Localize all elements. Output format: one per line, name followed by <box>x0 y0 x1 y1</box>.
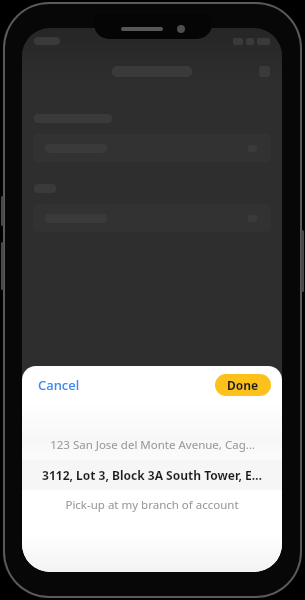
button[interactable]: Pick-up at my branch of account <box>22 490 282 520</box>
staticText: Pick-up at my branch of account <box>65 497 239 513</box>
staticText: Cancel <box>38 376 80 394</box>
button[interactable]: 3112, Lot 3, Block 3A South Tower, E… <box>22 460 282 490</box>
staticText: 123 San Jose del Monte Avenue, Cag… <box>50 437 255 453</box>
button[interactable]: Cancel <box>30 371 88 399</box>
staticText: 3112, Lot 3, Block 3A South Tower, E… <box>42 467 262 483</box>
button[interactable]: 123 San Jose del Monte Avenue, Cag… <box>22 430 282 460</box>
button[interactable]: Done <box>215 374 271 396</box>
staticText: Done <box>227 377 259 393</box>
